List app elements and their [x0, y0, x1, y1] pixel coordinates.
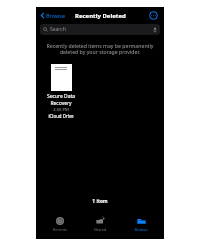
staticText: 1 item	[36, 198, 164, 205]
staticText: Shared	[83, 227, 117, 231]
staticText: 2:50 PM	[44, 107, 78, 113]
staticText: Recently Deleted	[75, 12, 126, 20]
staticText: Secure Data Recovery	[44, 93, 78, 107]
other: Voice search	[153, 27, 157, 33]
staticText: Recents	[43, 227, 77, 231]
staticText: iCloud Drive	[44, 113, 78, 119]
button[interactable]: Browse	[39, 10, 67, 21]
staticText: Browse	[124, 227, 158, 231]
button[interactable]: More options	[148, 10, 159, 21]
button[interactable]: Recents	[43, 216, 77, 232]
button[interactable]: Secure Data Recovery	[44, 64, 78, 119]
staticText: Browse	[46, 12, 66, 19]
button[interactable]: Browse	[124, 216, 158, 232]
button[interactable]: Shared	[83, 216, 117, 232]
button[interactable]: Search	[40, 24, 160, 35]
staticText: Search	[50, 26, 66, 33]
staticText: Recently deleted items may be permanentl…	[41, 42, 159, 56]
